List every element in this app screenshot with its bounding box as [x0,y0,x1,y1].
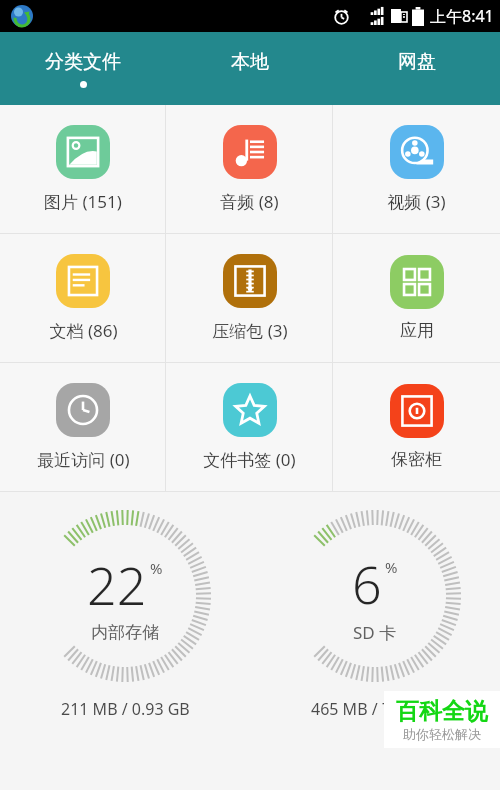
button[interactable]: 网盘 [333,32,500,105]
staticText: 网盘 [398,50,436,74]
staticText: 文档 (86) [49,319,118,342]
staticText: 211 MB / 0.93 GB [61,698,190,720]
button[interactable]: 分类文件 [0,32,166,105]
button[interactable]: 本地 [166,32,333,105]
staticText: SD 卡 [353,621,397,644]
staticText: 压缩包 (3) [212,319,288,342]
button[interactable]: 最近访问 (0) [0,363,166,491]
staticText: % [150,558,163,578]
button[interactable]: 视频 (3) [333,105,500,233]
button[interactable]: 图片 (151) [0,105,166,233]
staticText: 百科全说 [396,697,488,726]
staticText: 本地 [231,50,269,74]
button[interactable]: 文件书签 (0) [166,363,333,491]
staticText: 文件书签 (0) [203,448,296,471]
staticText: 22 [87,549,147,620]
button[interactable]: 文档 (86) [0,234,166,362]
button[interactable]: 压缩包 (3) [166,234,333,362]
staticText: 助你轻松解决 [403,726,481,742]
staticText: 6 [352,548,382,619]
staticText: 465 MB / 7.40 GB [311,698,440,720]
staticText: 应用 [400,320,434,341]
button[interactable]: 音频 (8) [166,105,333,233]
staticText: 图片 (151) [44,190,122,213]
staticText: 音频 (8) [220,190,279,213]
staticText: 上午8:41 [430,5,494,27]
staticText: 保密柜 [391,449,442,470]
staticText: 内部存储 [91,622,159,643]
staticText: 视频 (3) [387,190,446,213]
staticText: 最近访问 (0) [37,448,130,471]
button[interactable]: 保密柜 [333,363,500,491]
staticText: % [385,557,398,577]
button[interactable]: 应用 [333,234,500,362]
staticText: 分类文件 [45,50,121,74]
